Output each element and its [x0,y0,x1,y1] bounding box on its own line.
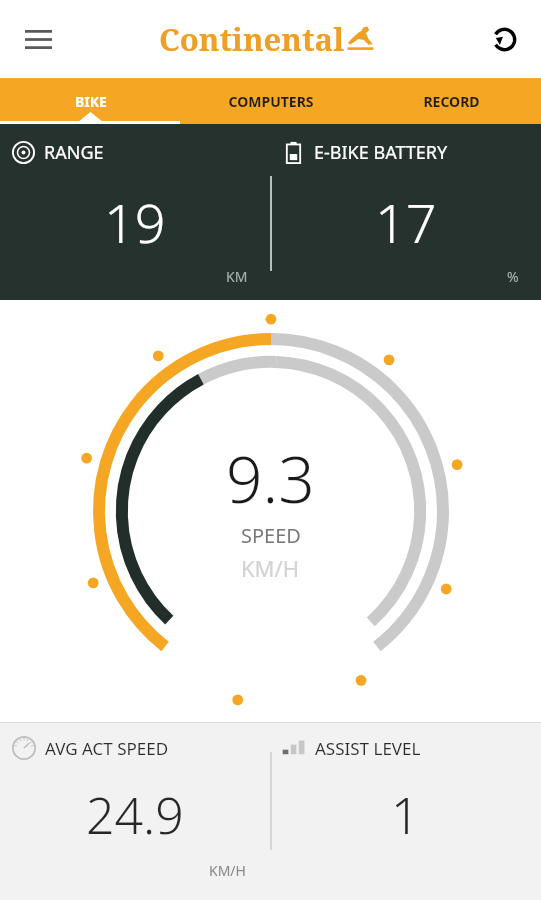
staticText: RANGE [44,140,104,165]
staticText: KM [226,267,248,286]
button[interactable]: Refresh [477,12,531,66]
staticText: BIKE [75,92,107,111]
button[interactable]: Menu [10,11,66,67]
staticText: 24.9 [86,781,184,849]
button[interactable]: COMPUTERS [181,78,361,124]
button[interactable]: ASSIST LEVEL [270,722,541,900]
staticText: ASSIST LEVEL [315,737,421,760]
button[interactable]: Continental [159,18,374,60]
staticText: COMPUTERS [228,92,314,111]
staticText: RECORD [423,92,480,111]
staticText: E-BIKE BATTERY [314,140,448,165]
staticText: % [507,267,519,286]
button[interactable]: AVG ACT SPEED [0,722,270,900]
staticText: AVG ACT SPEED [45,737,169,760]
staticText: 19 [104,185,166,259]
button[interactable]: RANGE [0,124,270,300]
staticText: KM/H [209,861,246,880]
staticText: KM/H [241,553,300,583]
staticText: 9.3 [226,435,315,522]
staticText: SPEED [241,522,301,549]
button[interactable]: BIKE [0,78,181,124]
staticText: 17 [375,185,437,259]
staticText: 1 [391,781,420,849]
button[interactable]: RECORD [361,78,541,124]
staticText: Continental [159,18,345,60]
button[interactable]: E-BIKE BATTERY [270,124,541,300]
